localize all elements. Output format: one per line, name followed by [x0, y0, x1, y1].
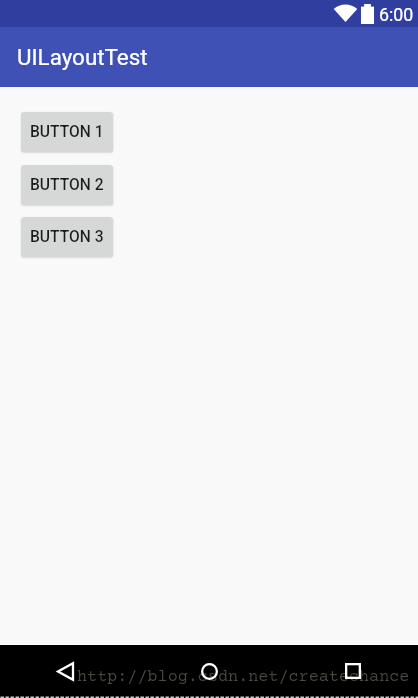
staticText: BUTTON 2	[30, 176, 104, 194]
staticText: BUTTON 3	[30, 228, 104, 246]
button[interactable]: BUTTON 2	[21, 165, 113, 205]
button[interactable]: Home	[185, 647, 233, 695]
staticText: 6:00	[379, 4, 414, 25]
button[interactable]: BUTTON 1	[21, 112, 113, 152]
button[interactable]: Back	[41, 647, 89, 695]
button[interactable]: Recent apps	[329, 647, 377, 695]
staticText: UILayoutTest	[17, 44, 148, 70]
staticText: http://blog.csdn.net/createchance	[77, 668, 410, 687]
staticText: BUTTON 1	[30, 123, 104, 141]
other: Battery full	[361, 4, 374, 24]
button[interactable]: BUTTON 3	[21, 217, 113, 257]
other: Wi-Fi signal full	[334, 5, 357, 22]
